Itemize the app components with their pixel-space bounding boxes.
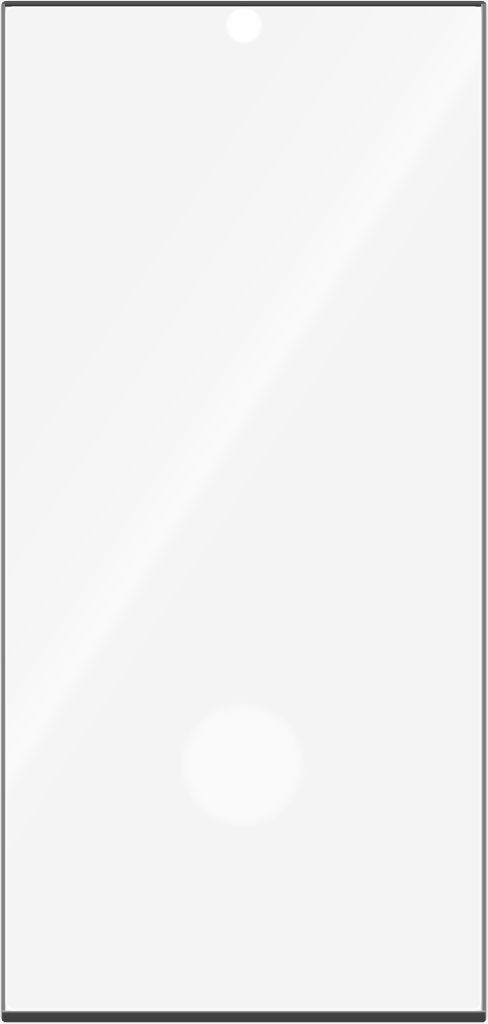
button[interactable]: Front camera: [225, 6, 263, 44]
